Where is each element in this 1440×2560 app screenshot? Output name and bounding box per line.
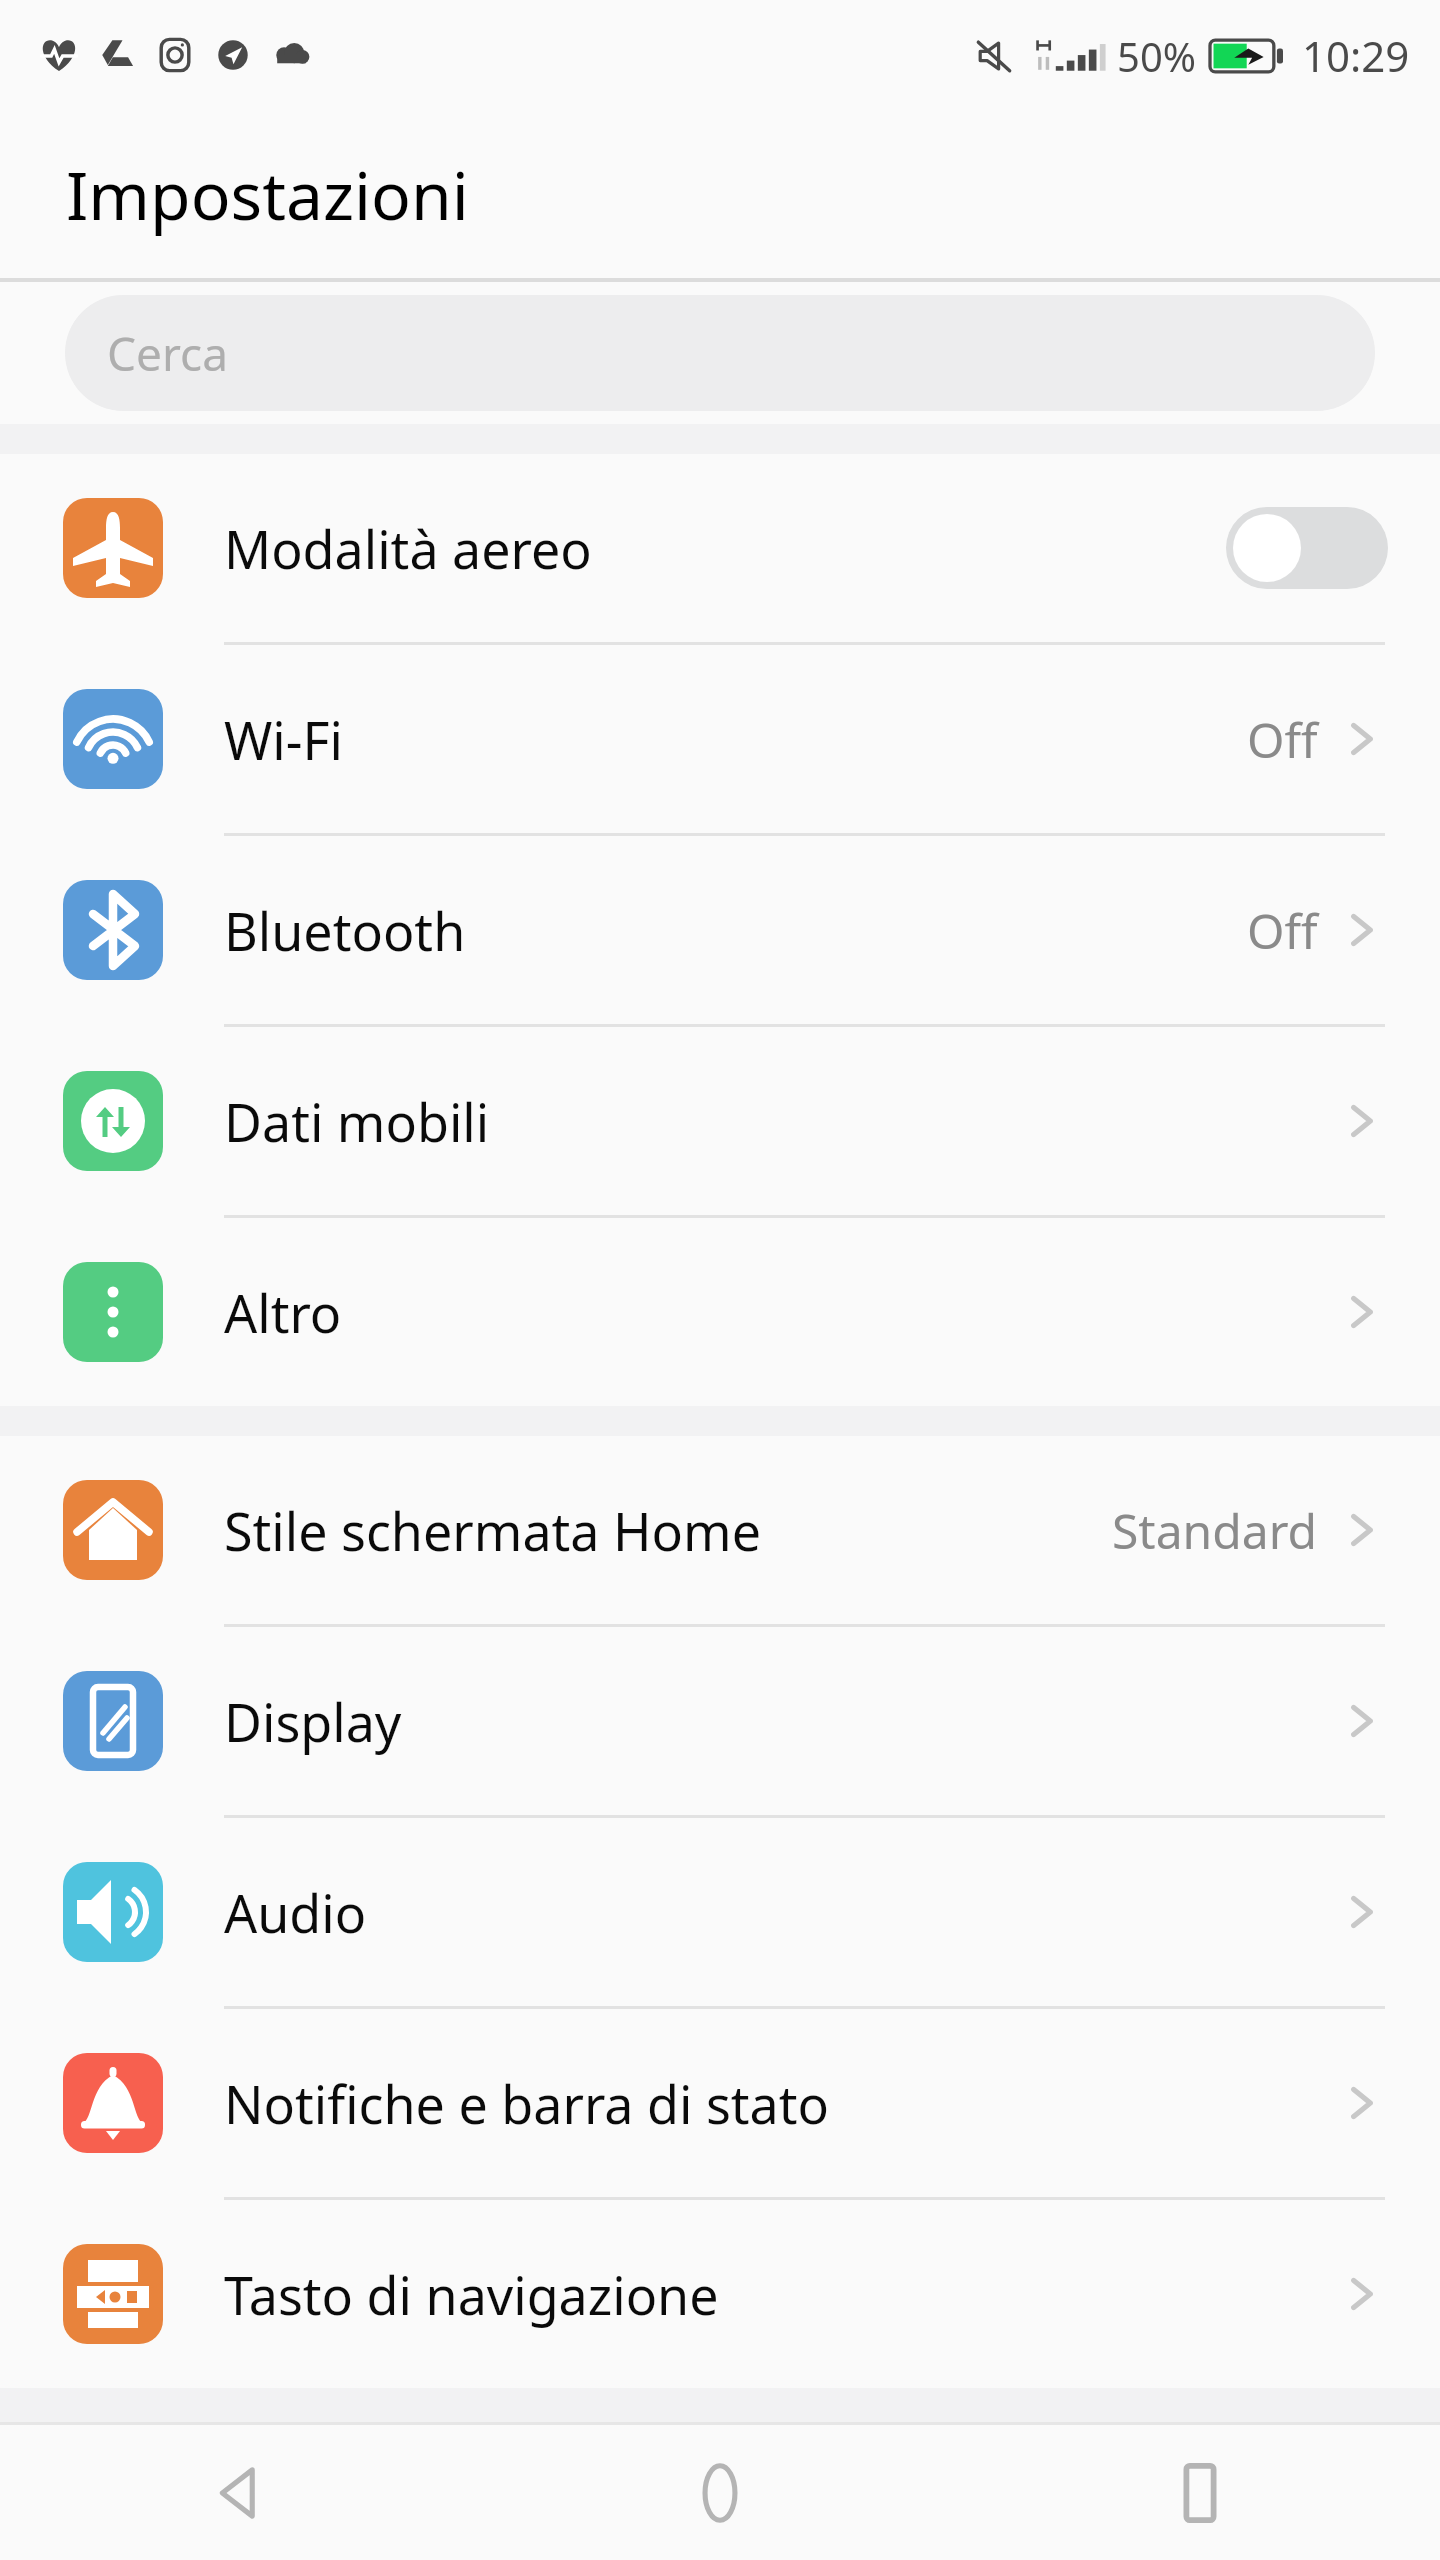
staticText: Impostazioni <box>66 149 469 239</box>
button[interactable]: Dati mobili <box>0 1027 1440 1215</box>
staticText: Tasto di navigazione <box>224 2259 1336 2330</box>
staticText: Cerca <box>107 322 228 385</box>
staticText: Off <box>1247 707 1318 772</box>
button[interactable]: Cerca <box>65 295 1375 411</box>
staticText: Dati mobili <box>224 1086 1336 1157</box>
button[interactable]: Home <box>480 2425 960 2560</box>
staticText: Modalità aereo <box>224 513 1226 584</box>
staticText: Off <box>1247 898 1318 963</box>
staticText: Bluetooth <box>224 895 1247 966</box>
button[interactable]: Notifiche e barra di stato <box>0 2009 1440 2197</box>
button[interactable]: Modalità aereo <box>0 454 1440 642</box>
button[interactable]: Bluetooth <box>0 836 1440 1024</box>
button[interactable]: Audio <box>0 1818 1440 2006</box>
button[interactable]: Recent apps <box>960 2425 1440 2560</box>
button[interactable]: Display <box>0 1627 1440 1815</box>
staticText: Standard <box>1112 1498 1318 1563</box>
staticText: Display <box>224 1686 1336 1757</box>
button[interactable]: Altro <box>0 1218 1440 1406</box>
staticText: 10:29 <box>1302 27 1410 84</box>
staticText: Wi-Fi <box>224 704 1247 775</box>
staticText: Notifiche e barra di stato <box>224 2068 1336 2139</box>
button[interactable]: Tasto di navigazione <box>0 2200 1440 2388</box>
staticText: Stile schermata Home <box>224 1495 1112 1566</box>
button[interactable]: Modalità aereo toggle <box>1226 507 1388 589</box>
button[interactable]: Wi-Fi <box>0 645 1440 833</box>
button[interactable]: Back <box>0 2425 480 2560</box>
staticText: Altro <box>224 1277 1336 1348</box>
button[interactable]: Stile schermata Home <box>0 1436 1440 1624</box>
staticText: 50% <box>1117 29 1196 83</box>
staticText: Audio <box>224 1877 1336 1948</box>
